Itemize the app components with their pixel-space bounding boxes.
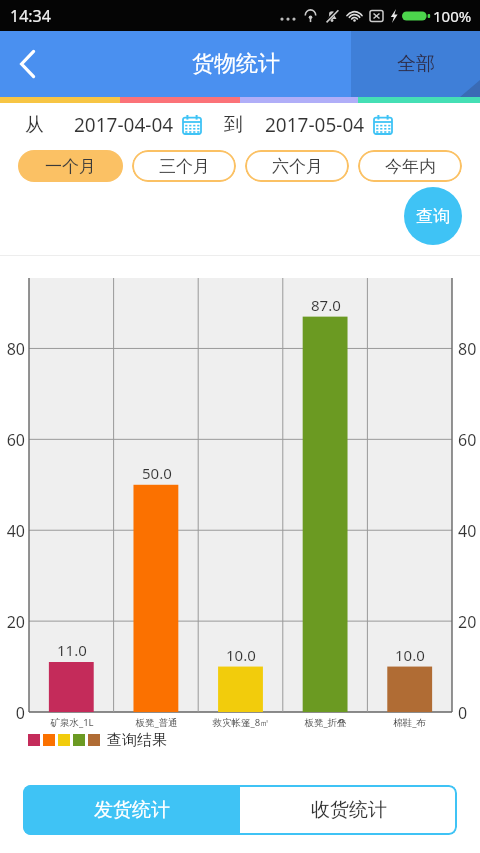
staticText: 矿泉水_1L [50,716,94,729]
staticText: 40 [458,520,477,542]
staticText: 60 [458,429,477,451]
staticText: 87.0 [311,295,341,315]
staticText: 今年内 [385,156,436,177]
staticText: 从 [25,113,44,137]
staticText: 货物统计 [192,50,280,78]
staticText: 六个月 [272,156,323,177]
button[interactable]: 2017-05-04 [265,112,393,138]
staticText: 2017-05-04 [265,112,365,138]
button[interactable]: 今年内 [358,150,462,182]
staticText: 100% [433,6,472,26]
staticText: 到 [224,113,243,137]
staticText: 80 [458,338,477,360]
staticText: 板凳_普通 [135,716,178,729]
staticText: 一个月 [45,156,96,177]
button[interactable]: Back [0,36,56,92]
staticText: 0 [0,702,25,724]
staticText: 板凳_折叠 [304,716,347,729]
staticText: 救灾帐篷_8㎡ [212,716,270,729]
button[interactable]: 一个月 [18,150,123,182]
button[interactable]: 全部 [351,31,480,97]
staticText: 查询 [416,206,450,227]
staticText: 棉鞋_布 [393,716,426,729]
staticText: 收货统计 [311,798,387,822]
staticText: 查询结果 [107,731,167,750]
button[interactable]: 2017-04-04 [74,112,202,138]
staticText: 0 [458,702,468,724]
staticText: 10.0 [226,645,256,665]
button[interactable]: 发货统计 [23,785,240,835]
staticText: 60 [0,429,25,451]
staticText: 11.0 [57,640,87,660]
button[interactable]: 查询 [404,187,462,245]
button[interactable]: 六个月 [245,150,349,182]
staticText: 20 [0,611,25,633]
staticText: 80 [0,338,25,360]
staticText: 2017-04-04 [74,112,174,138]
staticText: 50.0 [142,463,172,483]
staticText: 20 [458,611,477,633]
staticText: 14:34 [10,5,51,27]
staticText: 40 [0,520,25,542]
staticText: 全部 [397,52,435,76]
staticText: 发货统计 [94,798,170,822]
button[interactable]: 收货统计 [240,785,457,835]
staticText: 三个月 [159,156,210,177]
button[interactable]: 三个月 [132,150,236,182]
staticText: 10.0 [395,645,425,665]
